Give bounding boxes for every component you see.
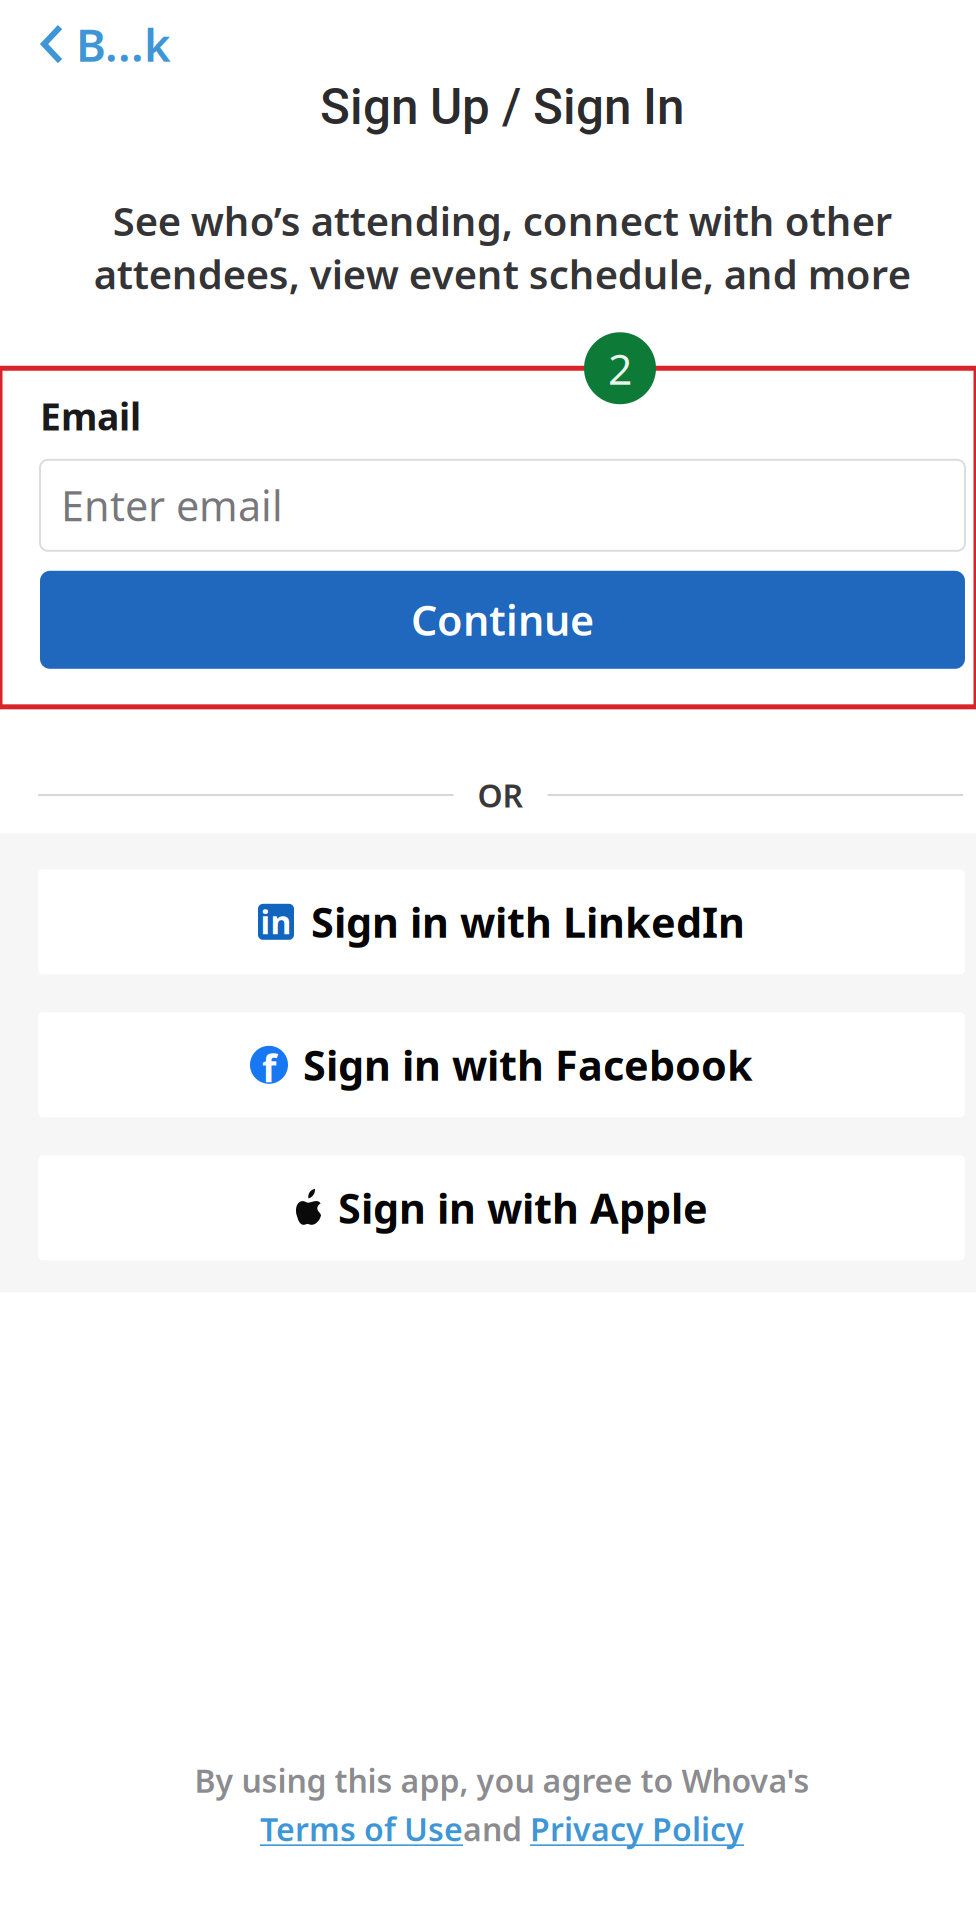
- staticText: Sign in with Apple: [338, 1180, 708, 1235]
- staticText: and: [463, 1807, 530, 1850]
- button[interactable]: Enter email: [40, 460, 965, 551]
- staticText: Privacy Policy: [530, 1807, 744, 1850]
- staticText: Enter email: [61, 478, 283, 533]
- staticText: Terms of Use: [260, 1807, 463, 1850]
- staticText: Sign in with Facebook: [303, 1037, 753, 1092]
- staticText: in: [260, 901, 291, 943]
- staticText: Continue: [411, 592, 594, 647]
- button[interactable]: B...k: [0, 10, 171, 78]
- button[interactable]: in: [38, 869, 965, 974]
- staticText: Email: [40, 391, 141, 441]
- staticText: Sign Up / Sign In: [320, 78, 684, 136]
- button[interactable]: Terms of Use: [260, 1807, 463, 1850]
- staticText: OR: [477, 774, 523, 816]
- button[interactable]: Continue: [40, 571, 965, 669]
- staticText: Sign in with LinkedIn: [311, 894, 745, 949]
- staticText: f: [262, 1043, 276, 1093]
- staticText: By using this app, you agree to Whova's: [194, 1759, 809, 1801]
- staticText: 2: [608, 340, 632, 397]
- button[interactable]: f: [38, 1012, 965, 1117]
- staticText: B...k: [76, 14, 171, 74]
- button[interactable]: Sign in with Apple: [38, 1155, 965, 1260]
- staticText: See who’s attending, connect with other …: [93, 194, 910, 300]
- button[interactable]: Privacy Policy: [530, 1807, 744, 1850]
